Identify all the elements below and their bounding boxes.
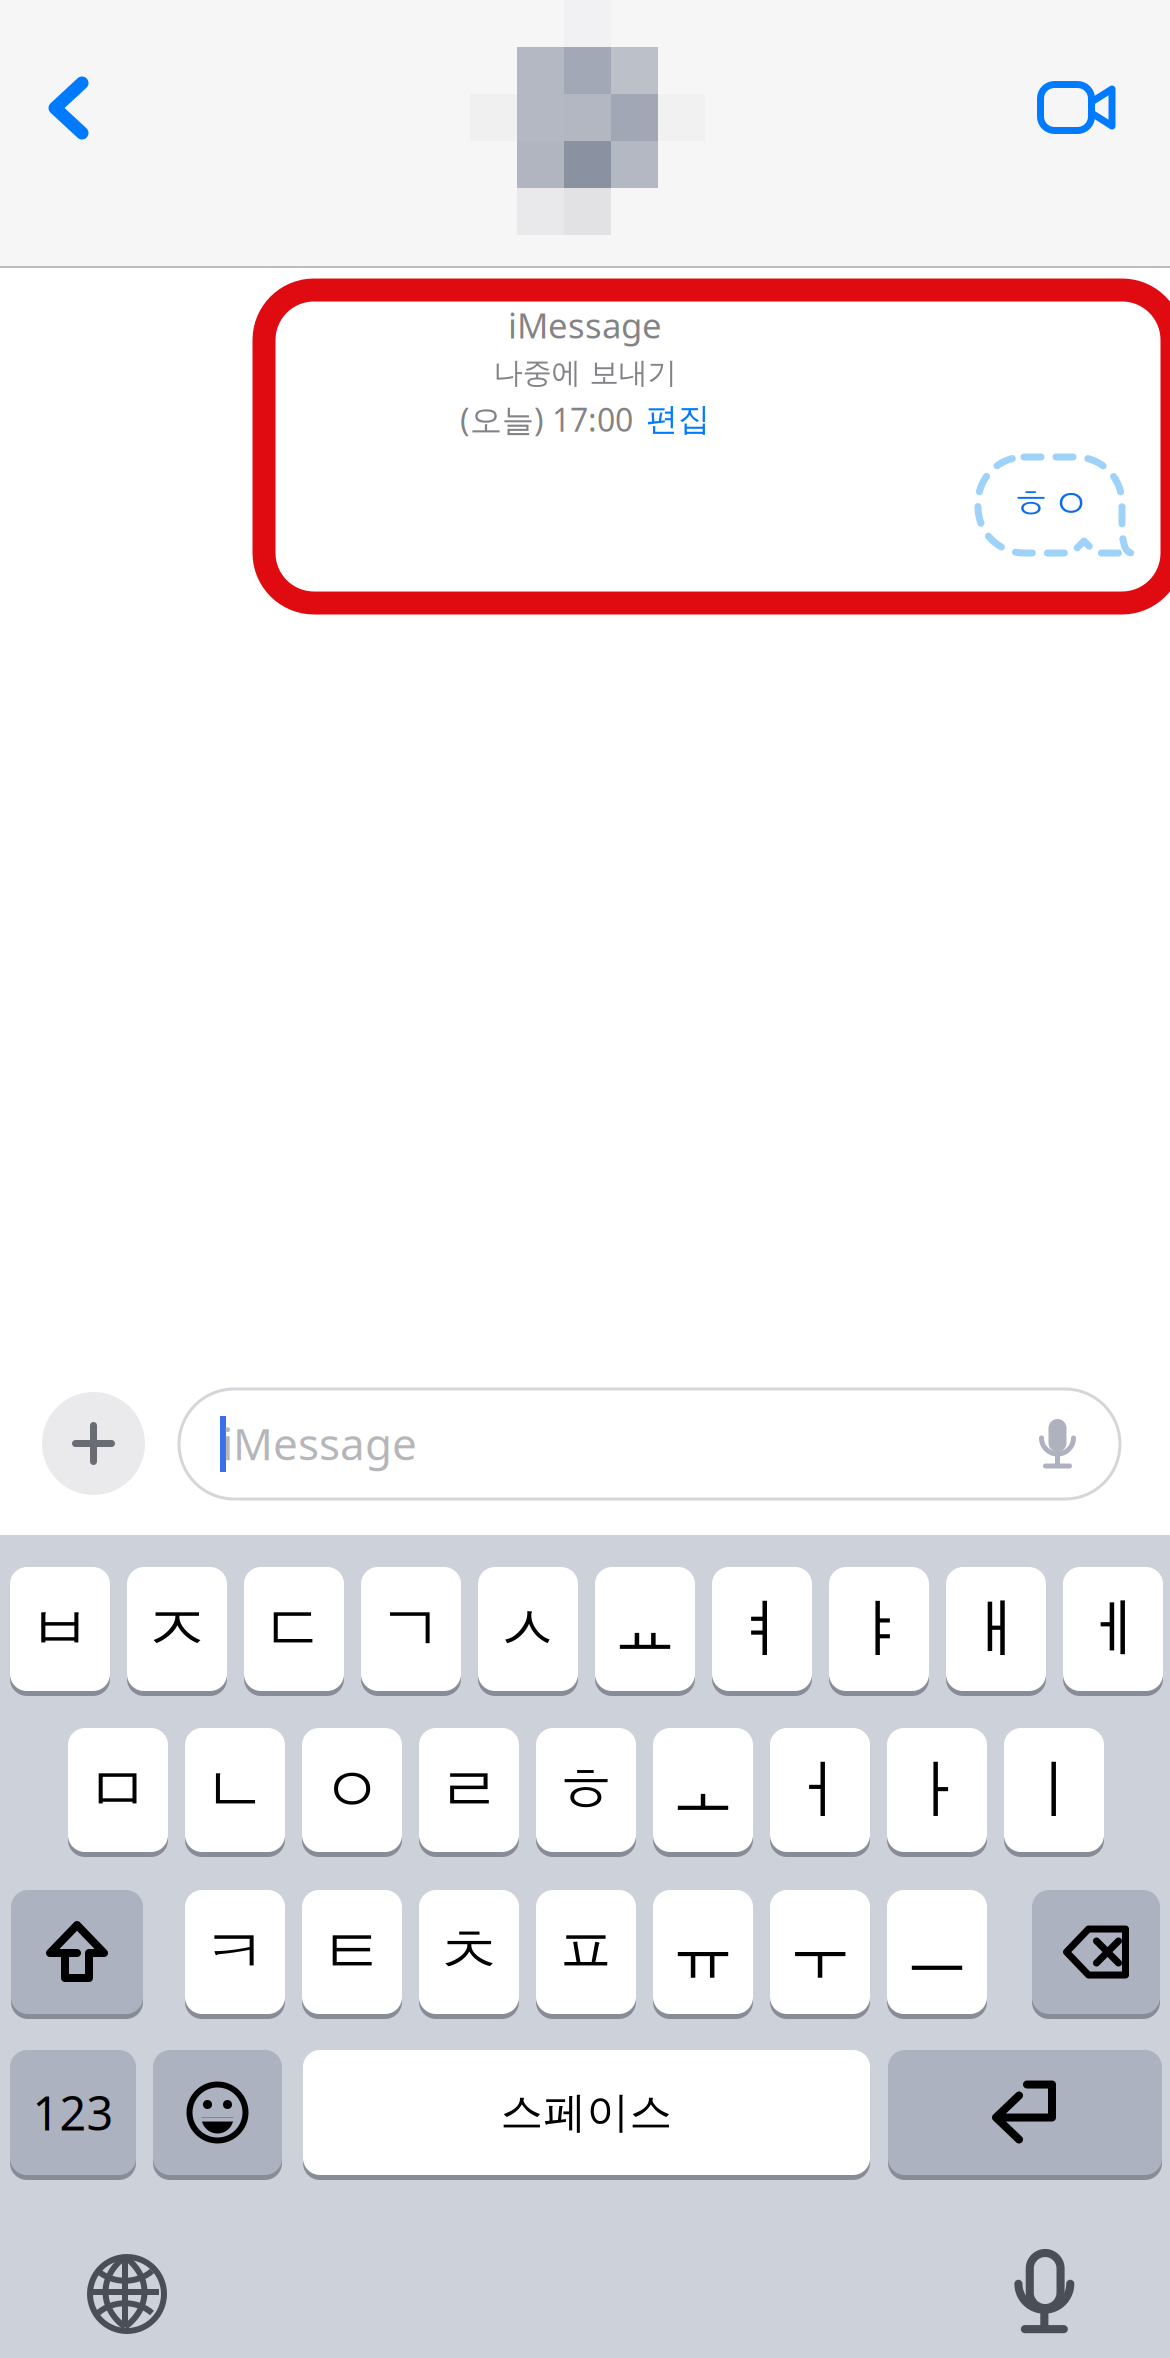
button[interactable]: ㅡ: [887, 1887, 987, 2017]
button[interactable]: Dictation: [1016, 2253, 1073, 2334]
staticText: iMessage: [508, 302, 662, 348]
staticText: ㅑ: [847, 1590, 911, 1668]
staticText: ㅎㅇ: [1011, 479, 1091, 528]
staticText: ㅛ: [613, 1590, 677, 1668]
button[interactable]: 123: [10, 2047, 136, 2178]
button[interactable]: ㄴ: [185, 1725, 285, 1855]
button[interactable]: Back: [28, 57, 109, 159]
button[interactable]: ㅐ: [946, 1564, 1046, 1694]
staticText: ㅐ: [964, 1590, 1028, 1668]
staticText: iMessage: [222, 1414, 417, 1472]
button[interactable]: Delete: [1032, 1887, 1160, 2017]
button[interactable]: ㅠ: [653, 1887, 753, 2017]
button[interactable]: ㅁ: [68, 1725, 168, 1855]
staticText: ㅔ: [1081, 1590, 1145, 1668]
staticText: ㄴ: [203, 1751, 267, 1829]
button[interactable]: ㅊ: [419, 1887, 519, 2017]
staticText: ㅕ: [730, 1590, 794, 1668]
button[interactable]: 편집: [646, 400, 710, 439]
staticText: ㅊ: [437, 1913, 501, 1991]
button[interactable]: ㅑ: [829, 1564, 929, 1694]
staticText: ㅇ: [320, 1751, 384, 1829]
button[interactable]: Return: [888, 2047, 1162, 2178]
button[interactable]: ㄷ: [244, 1564, 344, 1694]
button[interactable]: ㄹ: [419, 1725, 519, 1855]
button[interactable]: ㅔ: [1063, 1564, 1163, 1694]
staticText: ㄷ: [262, 1590, 326, 1668]
button[interactable]: ㅛ: [595, 1564, 695, 1694]
button[interactable]: ㅍ: [536, 1887, 636, 2017]
button[interactable]: ㅇ: [302, 1725, 402, 1855]
button[interactable]: Next keyboard: [85, 2252, 165, 2332]
staticText: ㅌ: [320, 1913, 384, 1991]
staticText: (오늘) 17:00: [460, 398, 633, 441]
button[interactable]: ㅜ: [770, 1887, 870, 2017]
staticText: ㅎ: [554, 1751, 618, 1829]
button[interactable]: FaceTime video call: [1017, 61, 1136, 154]
button[interactable]: Emoji: [153, 2047, 282, 2178]
button[interactable]: Shift: [11, 1887, 143, 2017]
button[interactable]: ㅣ: [1004, 1725, 1104, 1855]
staticText: ㄱ: [379, 1590, 443, 1668]
button[interactable]: ㅈ: [127, 1564, 227, 1694]
staticText: ㅋ: [203, 1913, 267, 1991]
button[interactable]: ㅓ: [770, 1725, 870, 1855]
staticText: ㅈ: [145, 1590, 209, 1668]
button[interactable]: ㅗ: [653, 1725, 753, 1855]
staticText: 편집: [646, 400, 710, 439]
staticText: ㅍ: [554, 1913, 618, 1991]
staticText: ㅂ: [28, 1590, 92, 1668]
staticText: 나중에 보내기: [493, 355, 676, 391]
staticText: 123: [32, 2081, 113, 2143]
button[interactable]: ㅎ: [536, 1725, 636, 1855]
staticText: ㅏ: [905, 1751, 969, 1829]
button[interactable]: ㅌ: [302, 1887, 402, 2017]
button[interactable]: ㅋ: [185, 1887, 285, 2017]
button[interactable]: ㅏ: [887, 1725, 987, 1855]
staticText: ㅜ: [788, 1913, 852, 1991]
staticText: ㅅ: [496, 1590, 560, 1668]
staticText: ㅓ: [788, 1751, 852, 1829]
staticText: ㅁ: [86, 1751, 150, 1829]
staticText: ㅡ: [905, 1913, 969, 1991]
button[interactable]: ㅕ: [712, 1564, 812, 1694]
staticText: ㄹ: [437, 1751, 501, 1829]
button[interactable]: ㅅ: [478, 1564, 578, 1694]
staticText: ㅗ: [671, 1751, 735, 1829]
button[interactable]: ㄱ: [361, 1564, 461, 1694]
button[interactable]: ㅂ: [10, 1564, 110, 1694]
button[interactable]: 스페이스: [303, 2047, 870, 2178]
staticText: ㅠ: [671, 1913, 735, 1991]
button[interactable]: Apps: [42, 1392, 145, 1495]
staticText: ㅣ: [1022, 1751, 1086, 1829]
staticText: 스페이스: [500, 2086, 672, 2139]
